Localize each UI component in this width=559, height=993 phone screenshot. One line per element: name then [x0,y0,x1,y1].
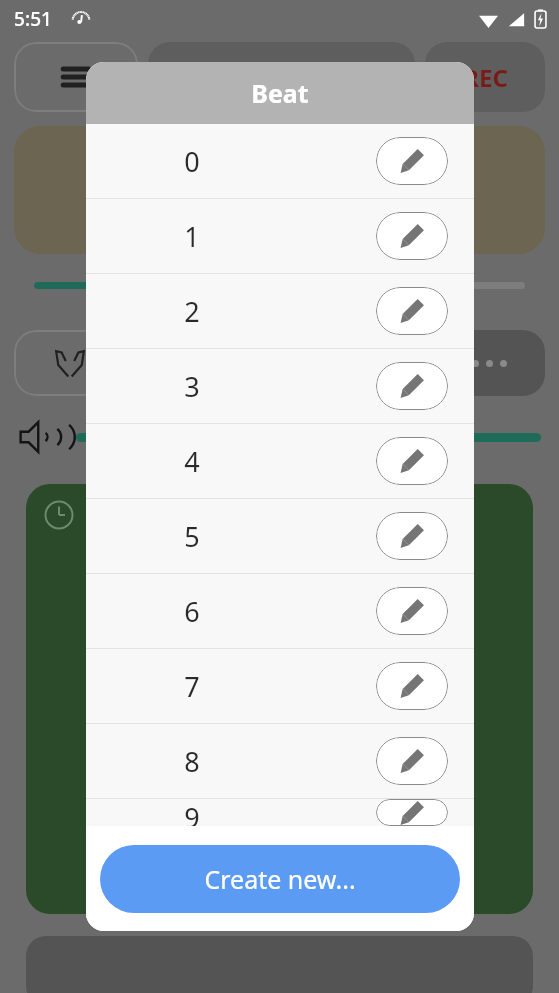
staticText: 4 [184,443,200,480]
button[interactable]: Create new... [100,845,460,913]
button[interactable]: 7 [86,649,474,723]
button[interactable] [14,126,273,254]
button[interactable]: REC [425,42,545,112]
staticText: 3 [184,368,200,405]
button[interactable]: 8 [86,724,474,798]
staticText: 5 [184,518,200,555]
staticText: 0 [184,143,200,180]
button[interactable]: Edit beat 2 [376,287,448,335]
button[interactable]: Edit beat 0 [376,137,448,185]
staticText: Create new... [204,862,356,896]
staticText: REC [463,61,508,94]
button[interactable]: 9 [86,799,474,826]
staticText: Beat [251,76,309,110]
button[interactable] [433,330,545,396]
button[interactable]: 1 [86,199,474,273]
staticText: 6 [184,593,200,630]
button[interactable]: 4 [86,424,474,498]
button[interactable] [26,484,533,914]
button[interactable]: 0 [86,124,474,198]
button[interactable]: Edit beat 8 [376,737,448,785]
staticText: 5:51 [14,6,52,32]
staticText: 1 [184,218,200,255]
button[interactable]: Edit beat 5 [376,512,448,560]
button[interactable]: 6 [86,574,474,648]
button[interactable]: Edit beat 9 [376,799,448,826]
staticText: 8 [184,743,200,780]
button[interactable] [14,42,138,112]
button[interactable]: Edit beat 3 [376,362,448,410]
staticText: 9 [184,799,200,826]
button[interactable] [148,42,415,112]
button[interactable]: Edit beat 4 [376,437,448,485]
button[interactable]: 2 [86,274,474,348]
button[interactable]: Edit beat 7 [376,662,448,710]
button[interactable]: Edit beat 1 [376,212,448,260]
staticText: 7 [184,668,200,705]
button[interactable]: 3 [86,349,474,423]
staticText: 2 [184,293,200,330]
button[interactable] [285,126,545,254]
button[interactable]: 5 [86,499,474,573]
button[interactable] [14,330,126,396]
button[interactable]: Edit beat 6 [376,587,448,635]
